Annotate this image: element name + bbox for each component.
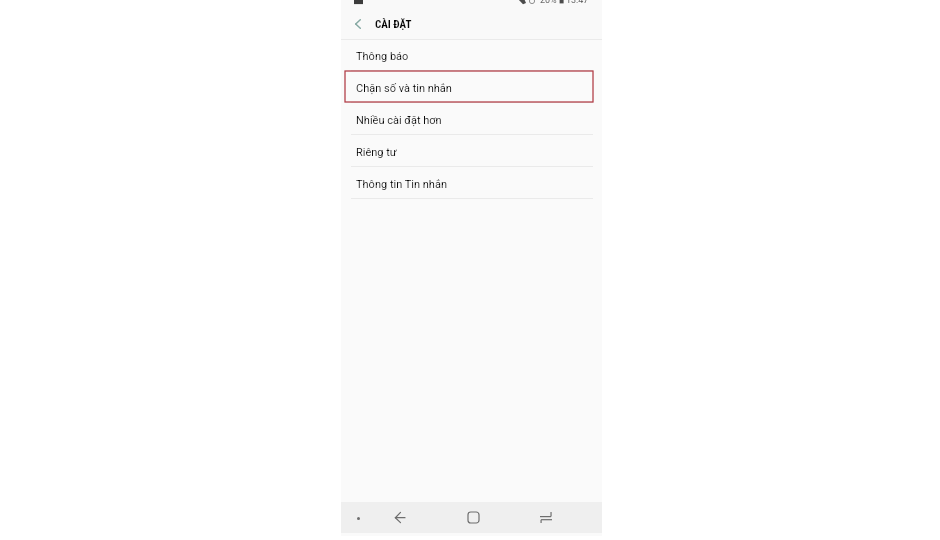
staticText: 13:47: [566, 0, 589, 6]
button[interactable]: Riêng tư: [341, 135, 602, 167]
staticText: 20%: [540, 0, 557, 6]
staticText: Thông báo: [356, 50, 409, 63]
button[interactable]: Chặn số và tin nhắn: [341, 71, 602, 103]
staticText: CÀI ĐẶT: [375, 18, 412, 31]
staticText: Nhiều cài đặt hơn: [356, 114, 442, 127]
button[interactable]: Home: [459, 504, 487, 531]
button[interactable]: Thông báo: [341, 39, 602, 71]
staticText: Thông tin Tin nhắn: [356, 178, 447, 191]
button[interactable]: Back: [349, 15, 367, 33]
button[interactable]: Thông tin Tin nhắn: [341, 167, 602, 199]
button[interactable]: Recent apps: [532, 504, 560, 531]
staticText: Chặn số và tin nhắn: [356, 82, 452, 95]
staticText: Riêng tư: [356, 146, 397, 159]
button[interactable]: Nhiều cài đặt hơn: [341, 103, 602, 135]
button[interactable]: Back: [386, 504, 414, 531]
button[interactable]: Hide navigation bar: [347, 507, 369, 529]
